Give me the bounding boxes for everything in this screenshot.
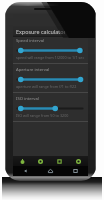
button[interactable]: Home — [38, 166, 63, 176]
button[interactable]: Back — [13, 166, 38, 176]
button[interactable]: Calculator — [50, 156, 69, 166]
staticText: ISO interval — [16, 96, 39, 102]
staticText: speed will range from 1/2000 to 1/1 sec — [16, 55, 85, 60]
staticText: Speed interval — [16, 38, 45, 44]
button[interactable]: Aperture interval range — [13, 76, 88, 83]
button[interactable]: Info — [69, 156, 88, 166]
button[interactable]: Exposure calculator — [13, 26, 88, 37]
button[interactable]: Light meter — [13, 156, 31, 166]
staticText: Exposure calculator — [16, 28, 66, 35]
button[interactable]: ISO interval range — [13, 105, 88, 112]
staticText: Aperture interval — [16, 67, 50, 73]
staticText: ISO will range from 50 to 3200 — [16, 113, 69, 118]
button[interactable]: Settings — [31, 156, 50, 166]
button[interactable]: Recent apps — [63, 166, 88, 176]
staticText: aperture will range from f/1 to f/22 — [16, 84, 77, 89]
button[interactable]: Speed interval range — [13, 47, 88, 54]
